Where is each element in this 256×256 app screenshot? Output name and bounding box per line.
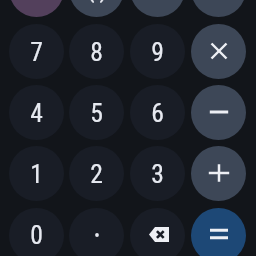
button[interactable]: 3	[130, 146, 185, 201]
button[interactable]: Parentheses	[69, 0, 124, 17]
staticText: 5	[90, 98, 103, 128]
button[interactable]: Decimal point	[69, 208, 124, 256]
button[interactable]: 8	[69, 24, 124, 79]
button[interactable]: Multiply	[191, 24, 246, 79]
staticText: 3	[151, 159, 164, 189]
button[interactable]: Divide	[191, 0, 246, 17]
button[interactable]: 0	[9, 208, 64, 256]
staticText: ()	[86, 0, 113, 3]
staticText: 2	[90, 159, 103, 189]
staticText: 1	[30, 159, 43, 189]
button[interactable]: 4	[9, 85, 64, 140]
button[interactable]: 1	[9, 146, 64, 201]
button[interactable]: 2	[69, 146, 124, 201]
button[interactable]: Equals	[191, 208, 246, 256]
staticText: 8	[90, 37, 103, 67]
button[interactable]: Clear	[9, 0, 64, 17]
button[interactable]: 7	[9, 24, 64, 79]
button[interactable]: 9	[130, 24, 185, 79]
staticText: 6	[151, 98, 164, 128]
button[interactable]: Backspace	[130, 208, 185, 256]
staticText: 9	[151, 37, 164, 67]
staticText: 0	[30, 220, 43, 250]
button[interactable]: 5	[69, 85, 124, 140]
button[interactable]: Percent	[130, 0, 185, 17]
staticText: 7	[30, 37, 43, 67]
staticText: 4	[30, 98, 43, 128]
button[interactable]: Plus	[191, 146, 246, 201]
button[interactable]: Minus	[191, 85, 246, 140]
button[interactable]: 6	[130, 85, 185, 140]
